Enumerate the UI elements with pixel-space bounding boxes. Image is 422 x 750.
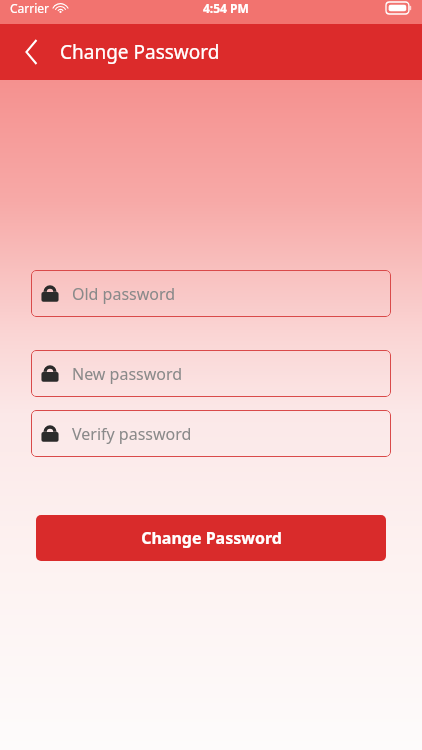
button[interactable]: New password xyxy=(31,350,391,397)
staticText: Change Password xyxy=(60,39,220,65)
staticText: Verify password xyxy=(72,423,192,445)
staticText: Change Password xyxy=(141,527,282,549)
button[interactable]: Old password xyxy=(31,270,391,317)
staticText: Old password xyxy=(72,283,176,305)
button[interactable]: Change Password xyxy=(36,515,386,561)
staticText: Carrier xyxy=(10,0,50,16)
staticText: 4:54 PM xyxy=(203,0,249,16)
button[interactable]: Verify password xyxy=(31,410,391,457)
button[interactable]: Back xyxy=(10,24,54,80)
staticText: New password xyxy=(72,363,183,385)
